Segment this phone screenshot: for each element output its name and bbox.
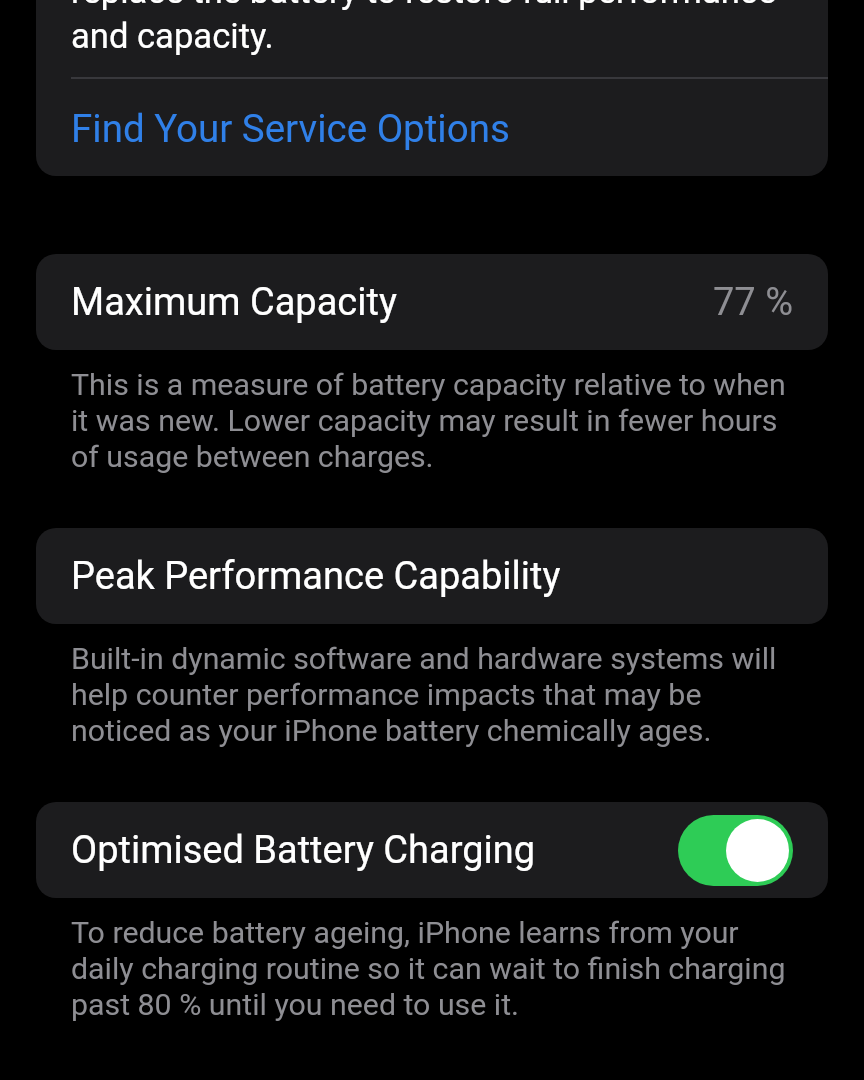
button[interactable]: Peak Performance Capability [36, 528, 828, 624]
button[interactable]: Find Your Service Options [36, 79, 828, 160]
button[interactable]: Maximum Capacity [36, 254, 828, 350]
staticText: Find Your Service Options [71, 106, 510, 151]
staticText: To reduce battery ageing, iPhone learns … [71, 914, 793, 1022]
button[interactable]: Optimised Battery Charging [36, 802, 828, 898]
staticText: replace the battery to restore full perf… [71, 0, 777, 57]
button[interactable]: Optimised Battery Charging [678, 815, 793, 886]
staticText: 77 % [713, 280, 793, 325]
staticText: Peak Performance Capability [71, 554, 561, 599]
staticText: This is a measure of battery capacity re… [71, 366, 793, 474]
staticText: Maximum Capacity [71, 280, 397, 325]
staticText: Built-in dynamic software and hardware s… [71, 640, 793, 748]
staticText: Optimised Battery Charging [71, 828, 536, 873]
